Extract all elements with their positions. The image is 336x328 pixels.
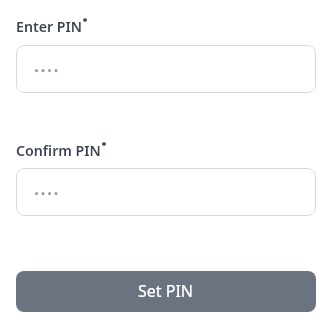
staticText: Enter PIN [16,17,83,36]
button[interactable]: Confirm PIN [16,168,316,216]
button[interactable]: Set PIN [16,271,316,312]
staticText: Confirm PIN [16,141,101,160]
button[interactable]: Enter PIN [16,45,316,93]
staticText: Set PIN [138,280,194,302]
